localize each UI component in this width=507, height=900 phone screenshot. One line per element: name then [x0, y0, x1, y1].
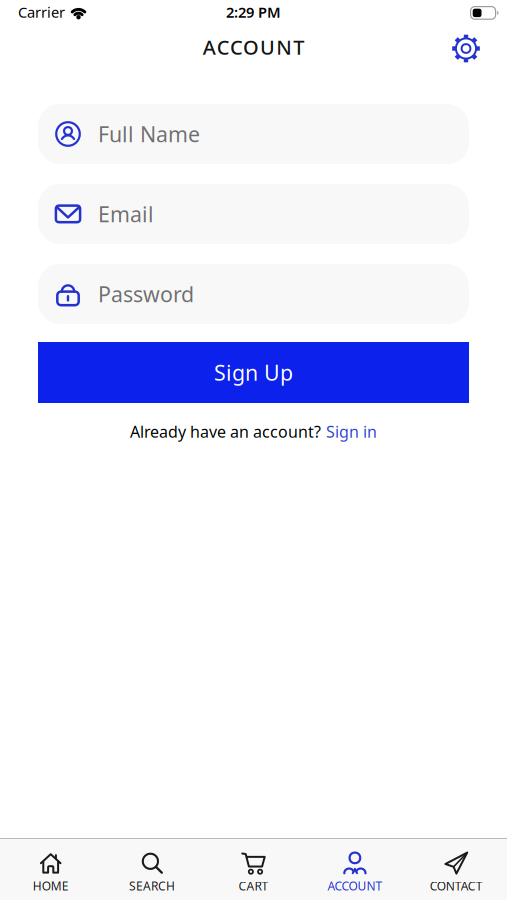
- button[interactable]: Sign in: [326, 421, 377, 442]
- staticText: Password: [98, 280, 194, 308]
- staticText: Email: [98, 200, 154, 228]
- staticText: Sign in: [326, 421, 377, 442]
- button[interactable]: CONTACT: [406, 851, 507, 894]
- staticText: Carrier: [18, 2, 65, 22]
- button[interactable]: HOME: [0, 851, 101, 894]
- button[interactable]: Full Name: [38, 104, 469, 164]
- staticText: SEARCH: [129, 878, 175, 894]
- staticText: 2:29 PM: [226, 2, 281, 22]
- staticText: HOME: [33, 878, 69, 894]
- staticText: CONTACT: [430, 878, 483, 894]
- button[interactable]: Password: [38, 264, 469, 324]
- staticText: Already have an account?: [130, 421, 321, 442]
- staticText: ACCOUNT: [203, 34, 304, 60]
- button[interactable]: [451, 33, 481, 63]
- button[interactable]: Email: [38, 184, 469, 244]
- button[interactable]: SEARCH: [101, 851, 203, 894]
- button[interactable]: CART: [203, 851, 304, 894]
- staticText: ACCOUNT: [327, 878, 382, 894]
- staticText: Full Name: [98, 120, 200, 148]
- staticText: CART: [238, 878, 268, 894]
- button[interactable]: ACCOUNT: [304, 851, 406, 894]
- staticText: Sign Up: [214, 358, 293, 387]
- button[interactable]: Sign Up: [38, 342, 469, 403]
